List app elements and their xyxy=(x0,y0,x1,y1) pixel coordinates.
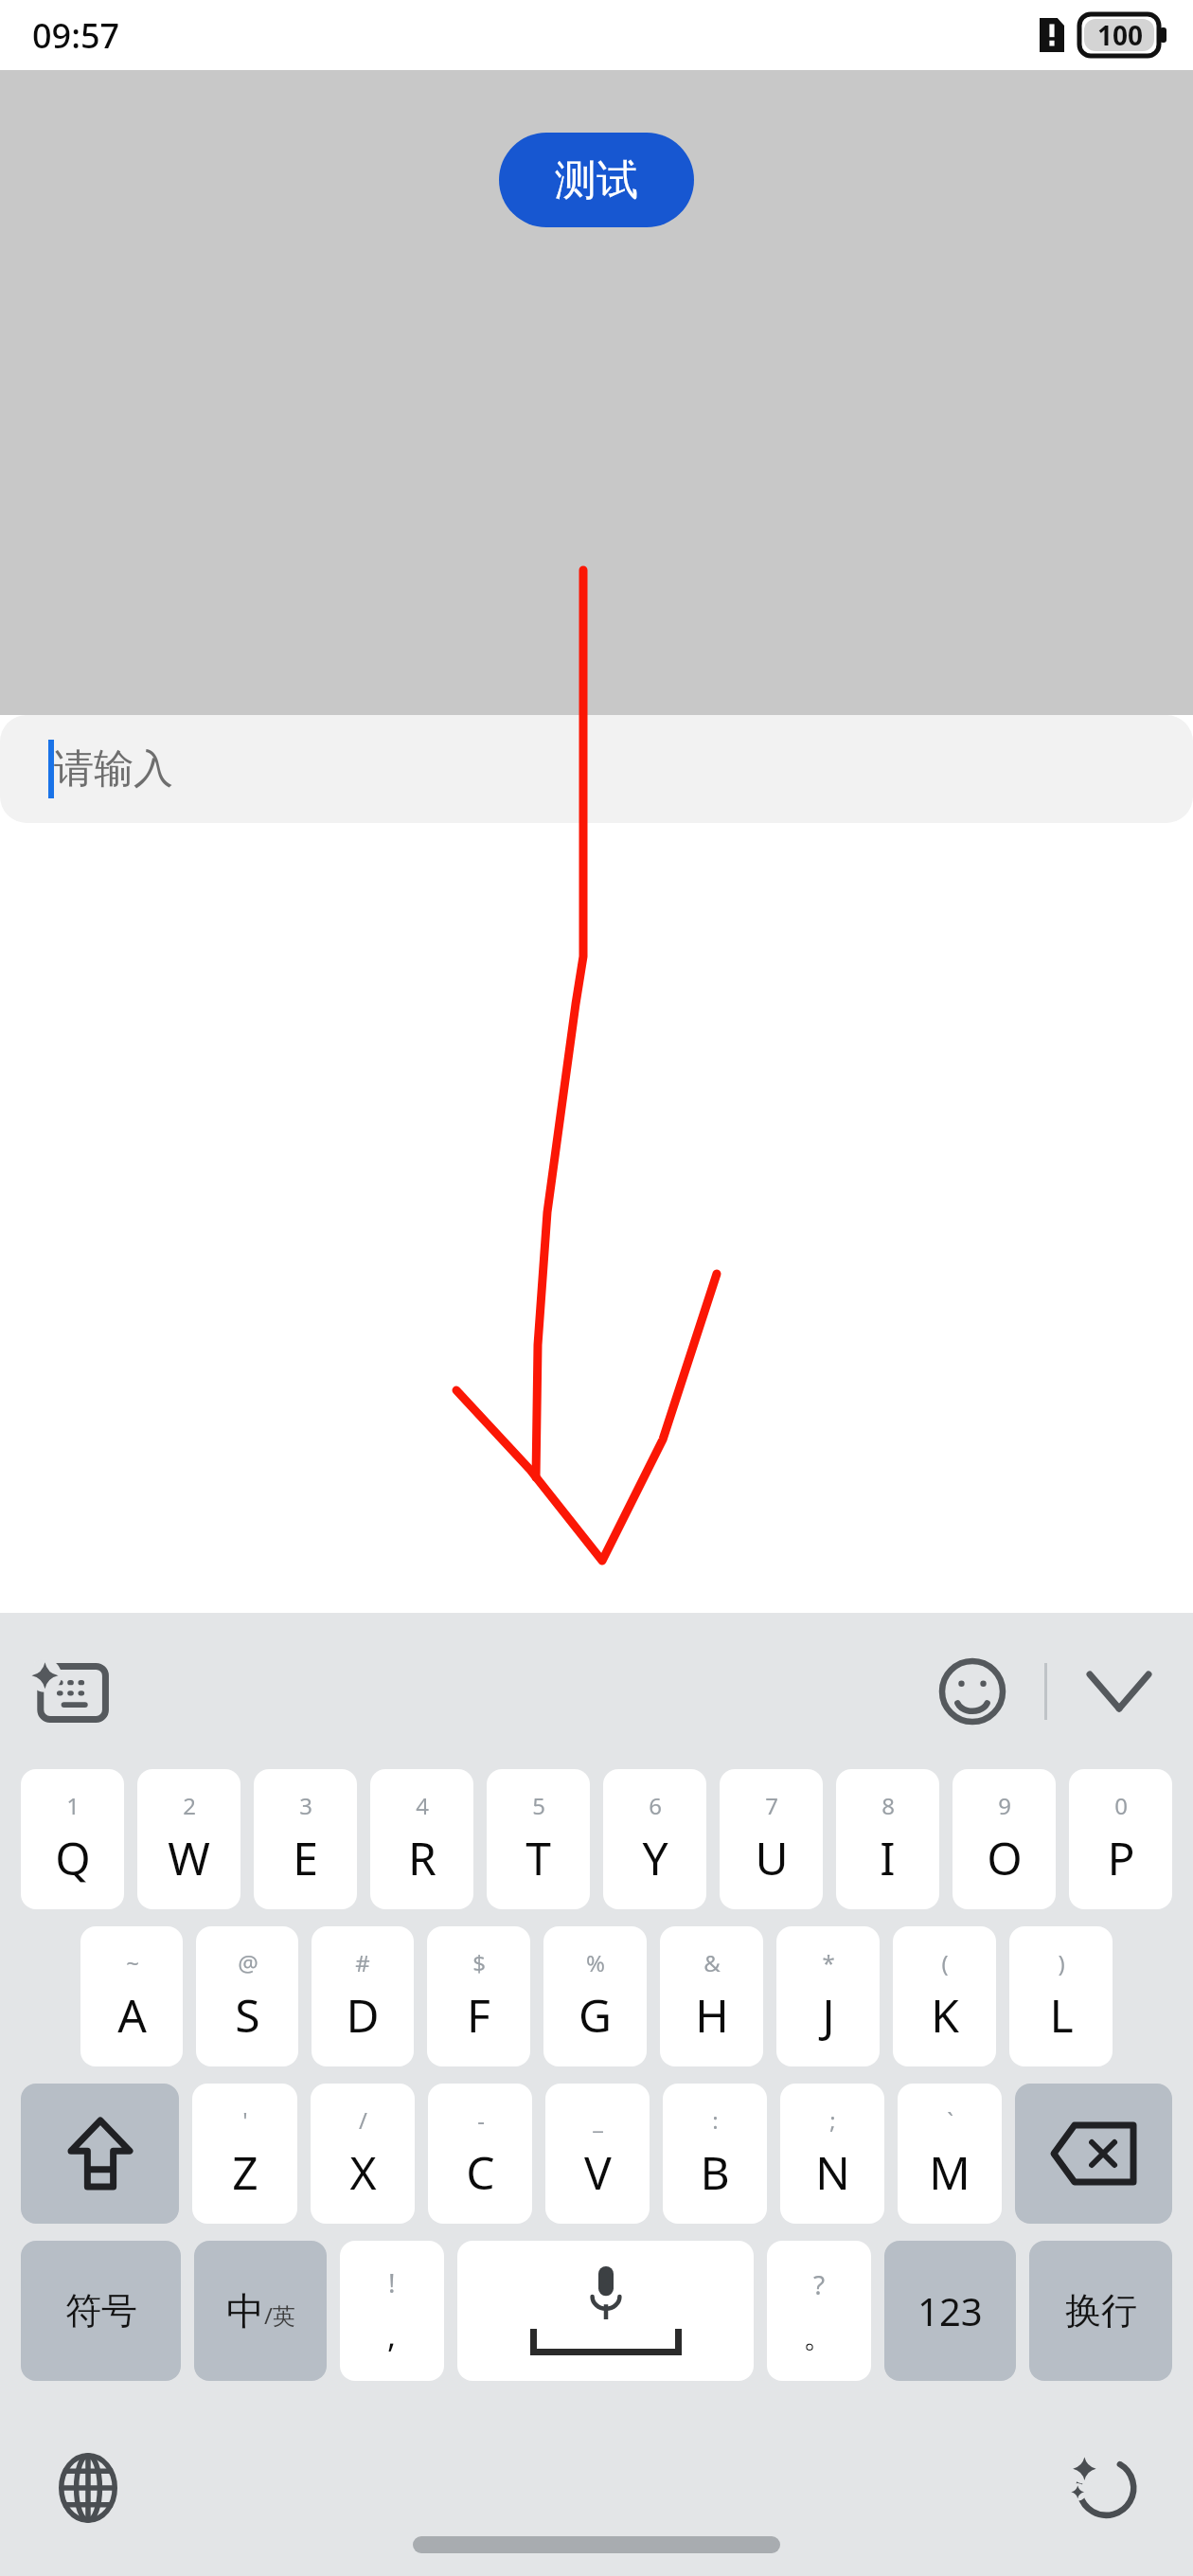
staticText: 0 xyxy=(1114,1790,1128,1821)
staticText: 。 xyxy=(803,2316,835,2356)
staticText: E xyxy=(293,1827,318,1888)
other: Backspace xyxy=(1054,2125,1133,2182)
staticText: ; xyxy=(829,2104,836,2136)
staticText: R xyxy=(408,1827,436,1888)
staticText: T xyxy=(525,1827,551,1888)
button[interactable]: ( xyxy=(893,1926,996,2066)
button[interactable]: - xyxy=(428,2084,532,2224)
button[interactable]: $ xyxy=(427,1926,530,2066)
staticText: 1 xyxy=(66,1790,80,1821)
staticText: H xyxy=(695,1984,729,2046)
staticText: ? xyxy=(813,2266,826,2302)
button[interactable]: 测试 xyxy=(499,133,694,227)
button[interactable]: 7 xyxy=(720,1769,823,1909)
staticText: W xyxy=(168,1827,210,1888)
button[interactable]: 1 xyxy=(21,1769,124,1909)
button[interactable]: * xyxy=(776,1926,880,2066)
staticText: 测试 xyxy=(555,154,638,206)
button[interactable]: ) xyxy=(1009,1926,1113,2066)
staticText: S xyxy=(235,1984,260,2046)
staticText: 4 xyxy=(416,1790,429,1821)
staticText: 2 xyxy=(183,1790,196,1821)
button[interactable]: _ xyxy=(545,2084,650,2224)
button[interactable]: ~ xyxy=(80,1926,183,2066)
staticText: * xyxy=(822,1947,835,1978)
staticText: L xyxy=(1049,1984,1074,2046)
staticText: ~ xyxy=(126,1947,139,1978)
button[interactable]: 4 xyxy=(370,1769,473,1909)
staticText: , xyxy=(387,2314,397,2357)
staticText: - xyxy=(477,2104,485,2136)
button[interactable]: AI keyboard xyxy=(21,1642,119,1741)
staticText: ' xyxy=(242,2104,248,2136)
staticText: ( xyxy=(941,1947,949,1978)
staticText: Y xyxy=(642,1827,668,1888)
button[interactable]: & xyxy=(660,1926,763,2066)
button[interactable]: AI rewrite xyxy=(1062,2445,1148,2531)
staticText: 5 xyxy=(532,1790,545,1821)
button[interactable]: 9 xyxy=(953,1769,1056,1909)
staticText: K xyxy=(931,1984,959,2046)
button[interactable]: Switch language xyxy=(45,2445,131,2531)
staticText: D xyxy=(346,1984,380,2046)
staticText: /英 xyxy=(264,2299,295,2331)
button[interactable]: Backspace xyxy=(1015,2084,1172,2224)
staticText: Z xyxy=(232,2141,258,2203)
button[interactable]: 0 xyxy=(1069,1769,1172,1909)
staticText: F xyxy=(467,1984,490,2046)
staticText: 中 xyxy=(226,2287,264,2334)
staticText: 8 xyxy=(881,1790,895,1821)
button[interactable]: 换行 xyxy=(1029,2241,1172,2381)
button[interactable]: 中 xyxy=(194,2241,327,2381)
staticText: P xyxy=(1107,1827,1135,1888)
button[interactable]: ; xyxy=(780,2084,884,2224)
button[interactable]: 符号 xyxy=(21,2241,181,2381)
staticText: N xyxy=(815,2141,850,2203)
staticText: 换行 xyxy=(1065,2288,1137,2334)
button[interactable]: Emoji xyxy=(927,1646,1018,1737)
staticText: Q xyxy=(55,1827,91,1888)
staticText: 6 xyxy=(649,1790,662,1821)
button[interactable]: 5 xyxy=(487,1769,590,1909)
staticText: _ xyxy=(593,2104,603,2136)
button[interactable]: Shift xyxy=(21,2084,179,2224)
button[interactable]: 8 xyxy=(836,1769,939,1909)
button[interactable]: 2 xyxy=(137,1769,240,1909)
button[interactable]: ? xyxy=(767,2241,871,2381)
staticText: J xyxy=(822,1984,835,2046)
button[interactable]: @ xyxy=(196,1926,298,2066)
staticText: 09:57 xyxy=(32,12,120,59)
staticText: ! xyxy=(388,2264,396,2300)
staticText: ` xyxy=(947,2104,953,2136)
staticText: 7 xyxy=(765,1790,778,1821)
button[interactable]: 3 xyxy=(254,1769,357,1909)
staticText: % xyxy=(586,1947,605,1978)
staticText: / xyxy=(359,2104,367,2136)
button[interactable]: ! xyxy=(340,2241,444,2381)
button[interactable]: Space, voice input xyxy=(457,2241,754,2381)
staticText: 123 xyxy=(917,2285,983,2336)
staticText: @ xyxy=(238,1947,258,1978)
button[interactable]: ` xyxy=(898,2084,1002,2224)
button[interactable]: ' xyxy=(192,2084,297,2224)
button[interactable]: % xyxy=(543,1926,647,2066)
staticText: U xyxy=(755,1827,789,1888)
staticText: M xyxy=(929,2141,970,2203)
staticText: # xyxy=(355,1947,370,1978)
staticText: 3 xyxy=(299,1790,312,1821)
staticText: & xyxy=(703,1947,721,1978)
button[interactable]: # xyxy=(312,1926,414,2066)
button[interactable]: : xyxy=(663,2084,767,2224)
button[interactable]: Hide keyboard xyxy=(1074,1646,1165,1737)
staticText: 9 xyxy=(998,1790,1011,1821)
button[interactable]: / xyxy=(311,2084,415,2224)
staticText: ) xyxy=(1058,1947,1065,1978)
staticText: 符号 xyxy=(65,2288,137,2334)
staticText: : xyxy=(712,2104,719,2136)
staticText: B xyxy=(700,2141,730,2203)
staticText: 请输入 xyxy=(54,744,173,795)
button[interactable]: 6 xyxy=(603,1769,706,1909)
button[interactable]: 123 xyxy=(884,2241,1016,2381)
staticText: G xyxy=(579,1984,612,2046)
button[interactable]: 请输入 xyxy=(0,715,1193,823)
